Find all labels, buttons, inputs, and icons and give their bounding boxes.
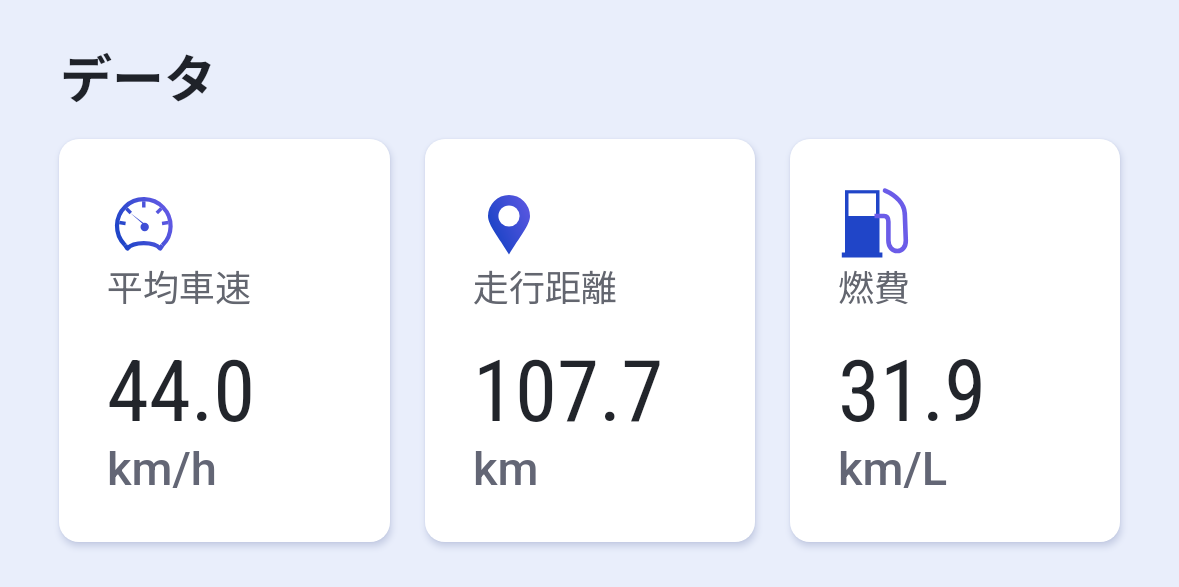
staticText: 走行距離 [473, 259, 618, 311]
staticText: 44.0 [107, 342, 256, 442]
button[interactable]: 平均車速 [59, 139, 390, 542]
staticText: km/L [838, 441, 948, 496]
staticText: 107.7 [473, 342, 664, 442]
staticText: 平均車速 [107, 259, 252, 311]
staticText: データ [60, 38, 217, 113]
staticText: km/h [107, 441, 217, 496]
staticText: 燃費 [838, 259, 911, 311]
button[interactable]: 燃費 [790, 139, 1120, 542]
staticText: km [473, 441, 539, 496]
staticText: 31.9 [838, 342, 987, 442]
button[interactable]: 走行距離 [425, 139, 755, 542]
